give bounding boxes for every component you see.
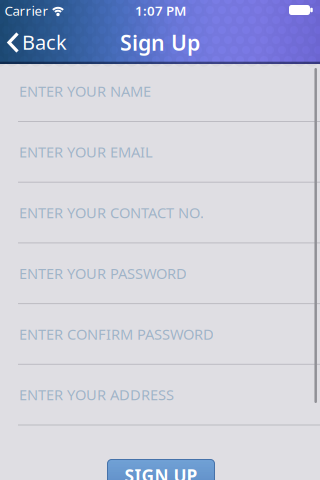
button[interactable]: ENTER YOUR ADDRESS	[0, 365, 320, 425]
button[interactable]: Back	[0, 21, 70, 63]
button[interactable]: ENTER YOUR PASSWORD	[0, 243, 320, 304]
button[interactable]: ENTER YOUR EMAIL	[0, 122, 320, 183]
button[interactable]: SIGN UP	[107, 459, 214, 480]
staticText: ENTER YOUR NAME	[19, 81, 151, 101]
staticText: ENTER YOUR CONTACT NO.	[19, 203, 204, 222]
staticText: ENTER YOUR EMAIL	[19, 142, 153, 162]
staticText: ENTER CONFIRM PASSWORD	[19, 324, 214, 344]
staticText: Sign Up	[120, 28, 200, 57]
button[interactable]: ENTER YOUR CONTACT NO.	[0, 183, 320, 243]
staticText: ENTER YOUR PASSWORD	[19, 263, 187, 283]
staticText: Back	[22, 29, 67, 55]
staticText: 1:07 PM	[135, 2, 186, 19]
button[interactable]: ENTER YOUR NAME	[0, 61, 320, 122]
button[interactable]: ENTER CONFIRM PASSWORD	[0, 304, 320, 365]
staticText: SIGN UP	[124, 464, 197, 480]
staticText: ENTER YOUR ADDRESS	[19, 385, 174, 404]
staticText: Carrier	[4, 2, 48, 19]
